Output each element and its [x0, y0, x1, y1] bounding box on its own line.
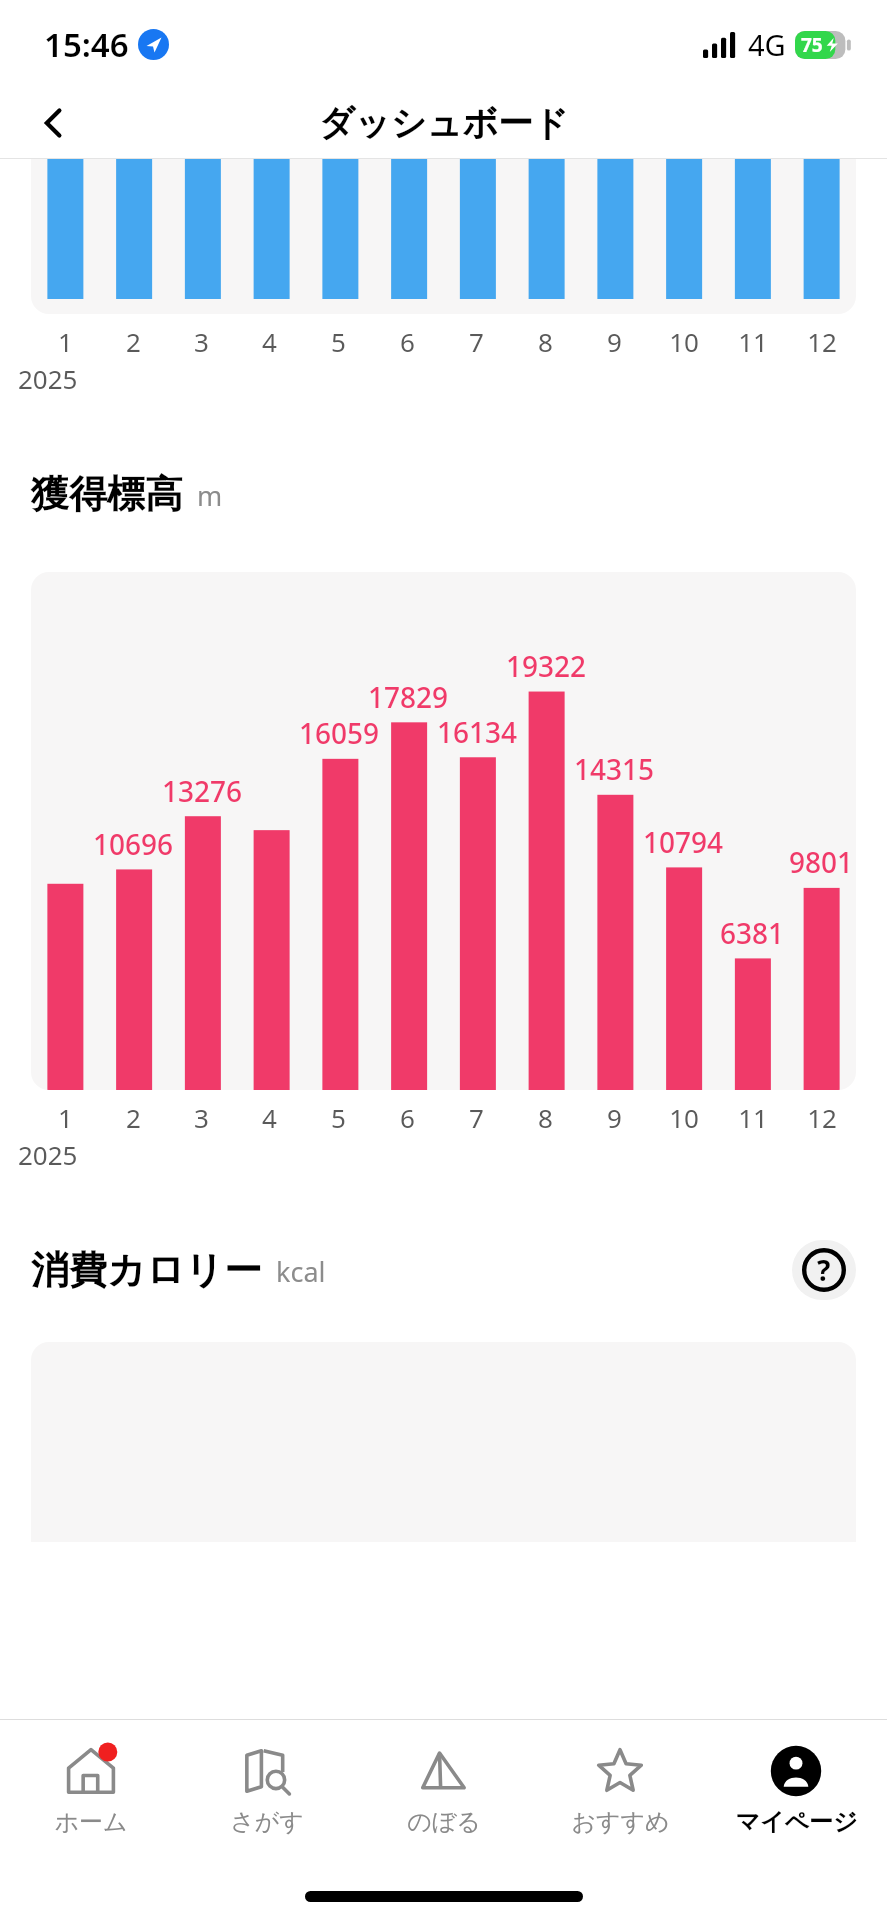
staticText: 2 — [126, 1100, 141, 1135]
staticText: 12 — [807, 1100, 837, 1135]
staticText: 2025 — [18, 361, 78, 396]
staticText: 10 — [669, 1100, 699, 1135]
staticText: m — [197, 477, 223, 514]
staticText: ? — [817, 1251, 831, 1289]
staticText: 3 — [194, 324, 209, 359]
button[interactable]: のぼる — [359, 1743, 529, 1837]
staticText: 15:46 — [44, 22, 129, 67]
staticText: 19322 — [506, 647, 587, 685]
staticText: さがす — [230, 1807, 304, 1837]
staticText: 13276 — [162, 772, 243, 810]
staticText: 10696 — [93, 825, 174, 863]
staticText: おすすめ — [571, 1807, 670, 1837]
staticText: 8 — [538, 324, 553, 359]
staticText: 1 — [58, 1100, 73, 1135]
staticText: 11 — [738, 324, 768, 359]
staticText: 16059 — [299, 714, 380, 752]
staticText: 5 — [331, 1100, 346, 1135]
staticText: 2025 — [18, 1137, 78, 1172]
staticText: 17829 — [368, 678, 449, 716]
staticText: 8 — [538, 1100, 553, 1135]
staticText: 14315 — [574, 750, 655, 788]
staticText: 16134 — [437, 713, 518, 751]
staticText: ホーム — [54, 1807, 128, 1837]
staticText: 6381 — [720, 914, 785, 952]
staticText: 7 — [469, 324, 484, 359]
staticText: 10 — [669, 324, 699, 359]
staticText: 5 — [331, 324, 346, 359]
button[interactable]: さがす — [182, 1743, 352, 1837]
staticText: 11 — [738, 1100, 768, 1135]
button[interactable]: おすすめ — [535, 1743, 705, 1837]
staticText: 4G — [748, 25, 786, 64]
staticText: 7 — [469, 1100, 484, 1135]
staticText: 9801 — [789, 843, 854, 881]
staticText: 消費カロリー — [31, 1246, 262, 1294]
staticText: 4 — [262, 324, 277, 359]
staticText: のぼる — [407, 1807, 481, 1837]
staticText: 4 — [262, 1100, 277, 1135]
button[interactable]: マイページ — [711, 1743, 881, 1837]
staticText: 6 — [400, 324, 415, 359]
staticText: ダッシュボード — [319, 101, 569, 145]
staticText: マイページ — [735, 1807, 858, 1837]
button[interactable]: Help — [792, 1240, 856, 1300]
staticText: kcal — [276, 1253, 326, 1290]
staticText: 12 — [807, 324, 837, 359]
staticText: 9 — [607, 324, 622, 359]
staticText: 10794 — [643, 823, 724, 861]
staticText: 2 — [126, 324, 141, 359]
staticText: 1 — [58, 324, 73, 359]
staticText: 75 — [801, 32, 823, 58]
button[interactable]: ホーム — [6, 1743, 176, 1837]
button[interactable]: Back — [22, 91, 86, 155]
staticText: 6 — [400, 1100, 415, 1135]
staticText: 3 — [194, 1100, 209, 1135]
staticText: 獲得標高 — [31, 470, 183, 518]
staticText: 9 — [607, 1100, 622, 1135]
